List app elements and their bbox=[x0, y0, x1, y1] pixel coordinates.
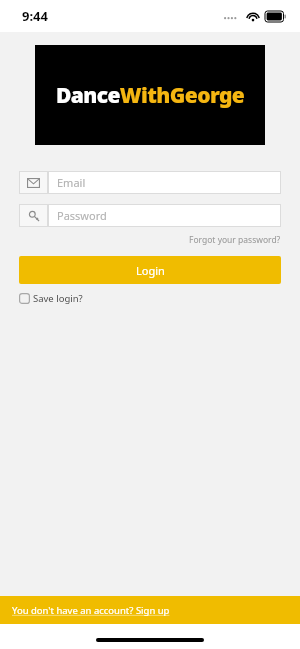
other: Email bbox=[27, 178, 40, 188]
button[interactable]: Email bbox=[19, 171, 281, 194]
staticText: Save login? bbox=[33, 292, 83, 305]
button[interactable]: You don't have an account? Sign up bbox=[0, 596, 300, 624]
staticText: You don't have an account? Sign up bbox=[12, 604, 170, 617]
staticText: Login bbox=[136, 263, 165, 278]
staticText: Password bbox=[57, 208, 107, 223]
staticText: 9:44 bbox=[22, 7, 48, 25]
button[interactable]: Password bbox=[19, 204, 281, 227]
staticText: Forgot your password? bbox=[189, 234, 281, 246]
button[interactable]: Forgot your password? bbox=[189, 233, 281, 247]
other: Password bbox=[28, 210, 40, 222]
staticText: Email bbox=[57, 175, 86, 190]
staticText: DanceWithGeorge bbox=[56, 81, 245, 110]
button[interactable]: Save login? bbox=[19, 292, 83, 305]
button[interactable]: Login bbox=[19, 256, 281, 284]
